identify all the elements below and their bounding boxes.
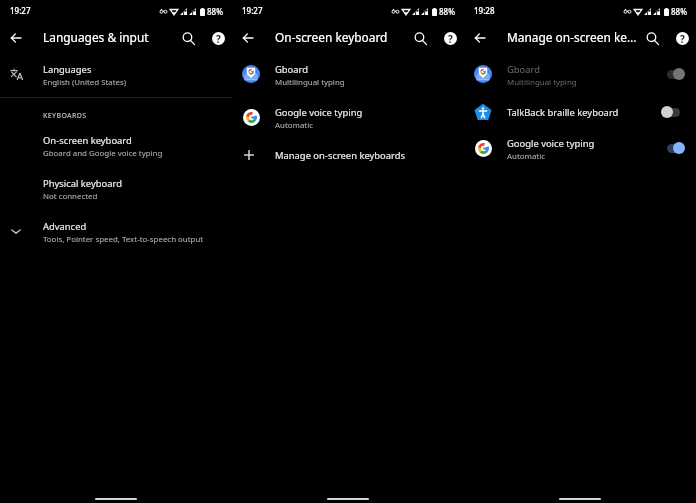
staticText: ?: [680, 32, 685, 45]
staticText: Automatic: [507, 151, 696, 162]
button[interactable]: Languages: [0, 55, 232, 88]
staticText: Languages: [43, 63, 228, 76]
staticText: Multilingual typing: [507, 77, 696, 88]
button[interactable]: Gboard: [464, 55, 696, 88]
staticText: 19:28: [474, 5, 495, 16]
staticText: 19:27: [10, 5, 31, 16]
staticText: Google voice typing: [507, 137, 692, 150]
button[interactable]: Search: [174, 24, 202, 52]
button[interactable]: Help: [204, 24, 232, 52]
staticText: Manage on-screen ke…: [507, 29, 642, 45]
button[interactable]: Help: [436, 24, 464, 52]
staticText: Automatic: [275, 120, 465, 131]
staticText: Physical keyboard: [43, 177, 228, 190]
button[interactable]: Google voice typing: [232, 98, 464, 131]
staticText: TalkBack braille keyboard: [507, 106, 692, 119]
staticText: Gboard and Google voice typing: [43, 148, 233, 159]
staticText: Tools, Pointer speed, Text-to-speech out…: [43, 234, 233, 245]
staticText: On-screen keyboard: [43, 134, 228, 147]
staticText: ?: [216, 32, 221, 45]
button[interactable]: Navigate up: [234, 24, 262, 52]
staticText: 88%: [439, 6, 455, 17]
staticText: 88%: [671, 6, 687, 17]
button[interactable]: Search: [638, 24, 666, 52]
button[interactable]: Toggle: [661, 67, 685, 81]
button[interactable]: On-screen keyboard: [0, 126, 232, 159]
button[interactable]: Toggle: [661, 141, 685, 155]
button[interactable]: Navigate up: [466, 24, 494, 52]
staticText: Multilingual typing: [275, 77, 465, 88]
button[interactable]: Google voice typing: [464, 129, 696, 162]
staticText: KEYBOARDS: [43, 111, 87, 121]
staticText: Advanced: [43, 220, 228, 233]
button[interactable]: TalkBack braille keyboard: [464, 98, 696, 122]
staticText: On-screen keyboard: [275, 29, 410, 45]
staticText: Google voice typing: [275, 106, 460, 119]
button[interactable]: Advanced: [0, 212, 232, 245]
staticText: Not connected: [43, 191, 233, 202]
button[interactable]: Search: [406, 24, 434, 52]
button[interactable]: Manage on-screen keyboards: [232, 141, 464, 165]
staticText: Manage on-screen keyboards: [275, 149, 460, 162]
staticText: 19:27: [242, 5, 263, 16]
staticText: English (United States): [43, 77, 233, 88]
staticText: ?: [448, 32, 453, 45]
button[interactable]: Help: [668, 24, 696, 52]
staticText: Gboard: [275, 63, 460, 76]
button[interactable]: Navigate up: [2, 24, 30, 52]
button[interactable]: Gboard: [232, 55, 464, 88]
button[interactable]: Physical keyboard: [0, 169, 232, 202]
staticText: Gboard: [507, 63, 692, 76]
staticText: 88%: [207, 6, 223, 17]
staticText: Languages & input: [43, 29, 178, 45]
button[interactable]: Toggle: [661, 105, 685, 119]
